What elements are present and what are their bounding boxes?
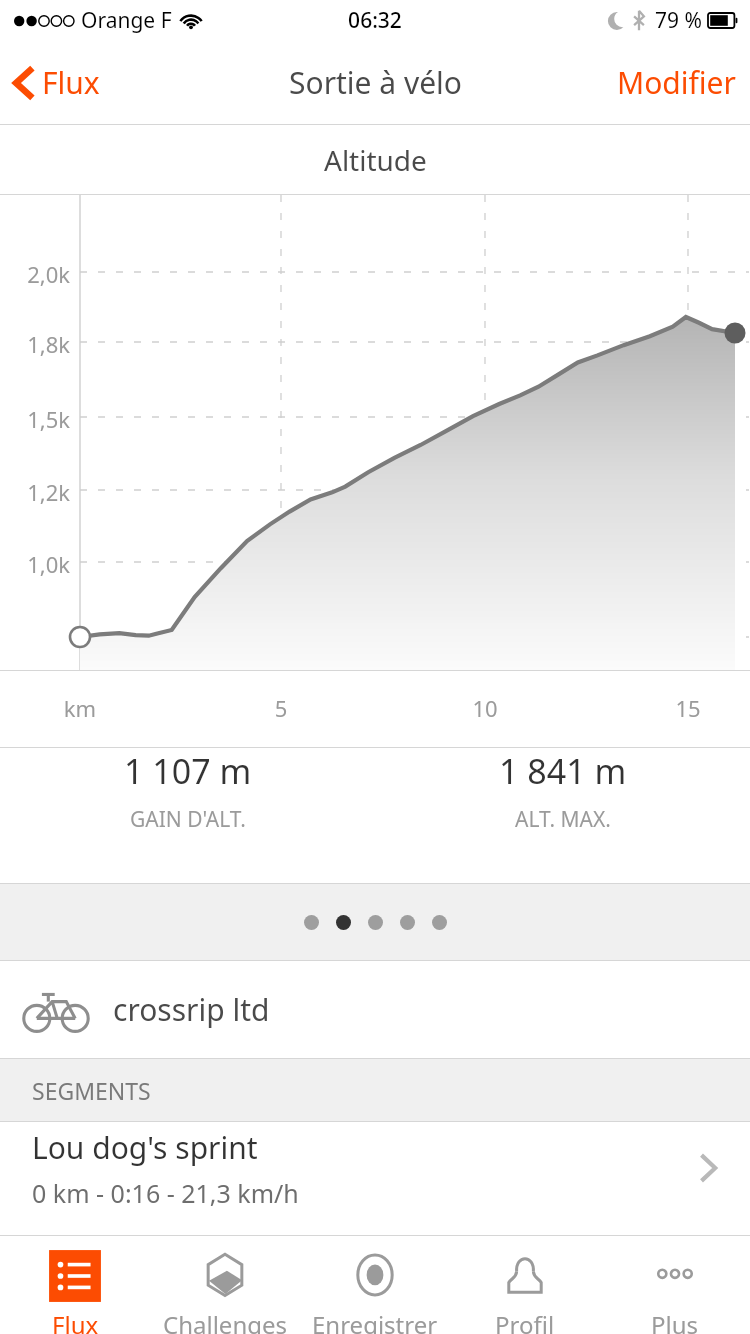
button[interactable]: Enregistrer — [300, 1236, 450, 1334]
staticText: 79 % — [655, 6, 702, 35]
button[interactable]: Challenges — [150, 1236, 300, 1334]
staticText: Orange F — [81, 6, 172, 35]
button[interactable]: Bike — [0, 961, 750, 1058]
staticText: Plus — [651, 1308, 699, 1334]
staticText: 2,0k — [16, 259, 70, 289]
button[interactable]: Modifier — [603, 52, 750, 113]
staticText: Modifier — [617, 62, 736, 103]
staticText: GAIN D'ALT. — [130, 805, 246, 834]
staticText: 10 — [445, 693, 525, 723]
staticText: Altitude — [324, 141, 427, 179]
button[interactable]: Profil — [450, 1236, 600, 1334]
staticText: 1 107 m — [124, 748, 252, 794]
button[interactable]: Flux — [0, 1236, 150, 1334]
staticText: 0 km - 0:16 - 21,3 km/h — [32, 1176, 299, 1210]
staticText: Profil — [495, 1308, 555, 1334]
staticText: Sortie à vélo — [289, 62, 462, 103]
staticText: 1,8k — [16, 329, 70, 359]
button[interactable]: Lou dog's sprint — [0, 1122, 750, 1214]
other: Bike — [24, 989, 88, 1031]
staticText: 1,5k — [16, 404, 70, 434]
staticText: 1,2k — [16, 477, 70, 507]
staticText: Enregistrer — [312, 1308, 438, 1334]
button[interactable] — [368, 915, 383, 930]
staticText: 15 — [648, 693, 728, 723]
staticText: Flux — [52, 1308, 99, 1334]
staticText: 1 841 m — [499, 748, 627, 794]
staticText: Lou dog's sprint — [32, 1127, 258, 1168]
button[interactable] — [336, 915, 351, 930]
button[interactable] — [304, 915, 319, 930]
staticText: 5 — [241, 693, 321, 723]
staticText: 1,0k — [16, 549, 70, 579]
staticText: crossrip ltd — [113, 989, 270, 1030]
staticText: SEGMENTS — [32, 1075, 151, 1106]
button[interactable]: Plus — [600, 1236, 750, 1334]
staticText: ALT. MAX. — [515, 805, 611, 834]
staticText: Flux — [42, 62, 100, 103]
button[interactable]: Flux — [0, 54, 110, 111]
staticText: 06:32 — [348, 6, 402, 35]
button[interactable] — [432, 915, 447, 930]
staticText: Challenges — [163, 1308, 288, 1334]
staticText: km — [40, 693, 120, 723]
button[interactable] — [400, 915, 415, 930]
